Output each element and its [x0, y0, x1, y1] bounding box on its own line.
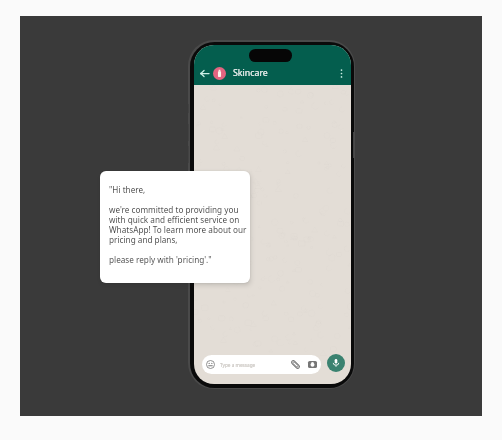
staticText: "Hi there, we're committed to providing …: [109, 184, 249, 265]
button[interactable]: Attach: [290, 359, 301, 370]
button[interactable]: Back: [197, 66, 211, 80]
button[interactable]: Contact photo: [213, 67, 226, 80]
button[interactable]: More options: [335, 67, 348, 80]
button[interactable]: Emoji: [202, 355, 321, 374]
button[interactable]: Camera: [308, 360, 317, 369]
staticText: Type a message: [220, 362, 256, 368]
button[interactable]: Emoji: [205, 359, 216, 370]
button[interactable]: Voice message: [327, 354, 345, 372]
staticText: Skincare: [233, 67, 268, 79]
